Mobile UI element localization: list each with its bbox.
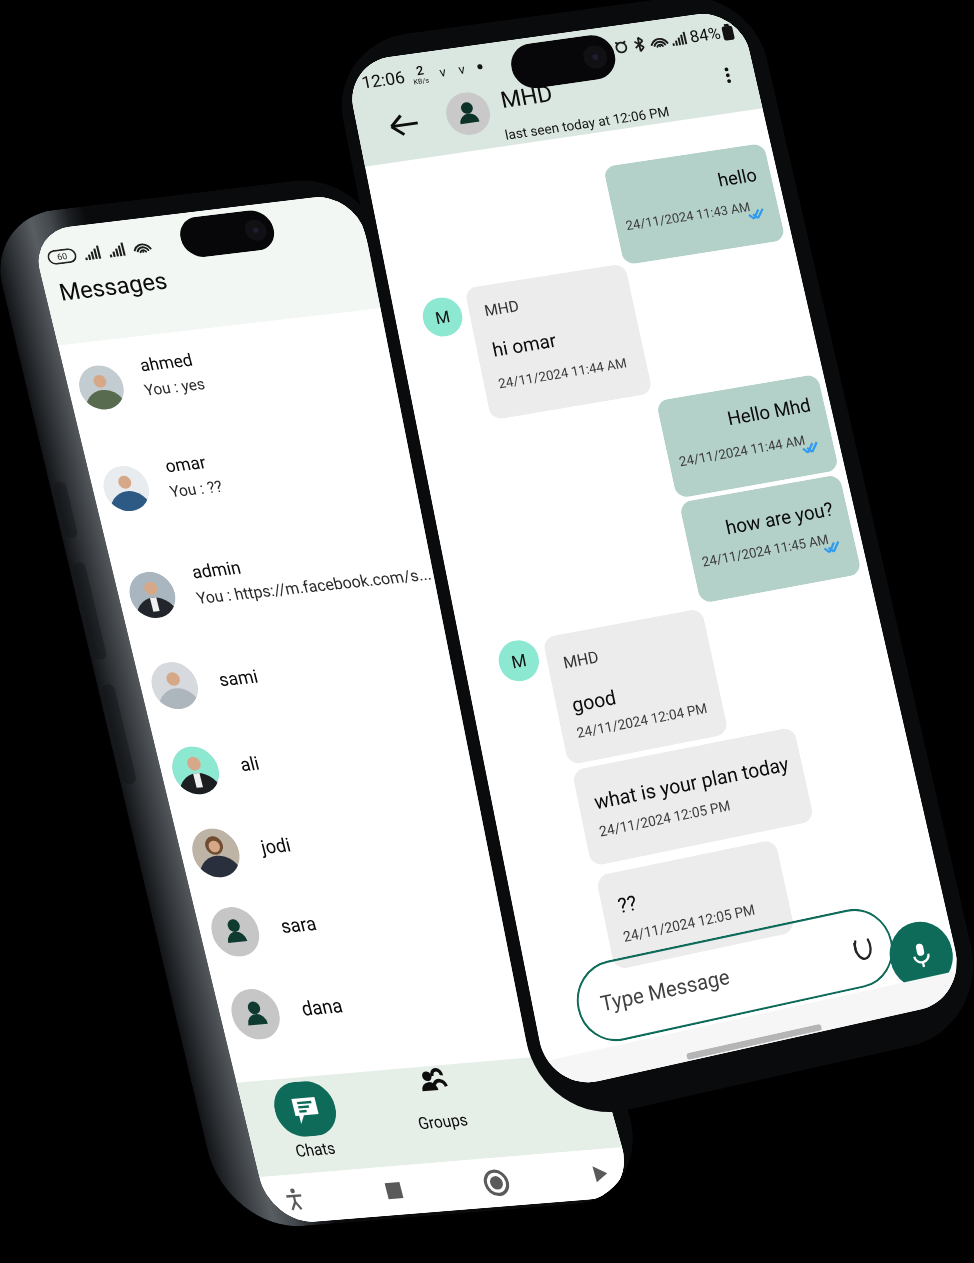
button[interactable]: jodi	[46, 669, 414, 729]
button[interactable]: More options	[372, 73, 400, 101]
button[interactable]: sami	[46, 497, 414, 557]
staticText: good	[104, 655, 146, 677]
button[interactable]: omar	[46, 286, 414, 346]
staticText: M	[50, 274, 64, 293]
button[interactable]: Type Message	[52, 898, 356, 970]
staticText: dana	[131, 846, 173, 868]
staticText: what is your plan today	[106, 746, 295, 768]
button[interactable]: dana	[46, 829, 414, 889]
staticText: You : yes	[129, 202, 197, 222]
button[interactable]: Groups	[213, 918, 275, 984]
staticText: Type Message	[74, 923, 197, 945]
staticText: MHD	[104, 617, 138, 635]
staticText: hello	[353, 181, 393, 203]
staticText: jodi	[131, 686, 162, 708]
other: Attach file	[314, 921, 340, 947]
staticText: 24/11/2024 12:05 PM	[105, 776, 232, 791]
button[interactable]: ahmed	[46, 174, 414, 234]
staticText: omar	[131, 285, 176, 307]
staticText: 24/11/2024 11:43 AM	[252, 215, 379, 230]
staticText: ali	[131, 602, 151, 624]
staticText: 24/11/2024 12:04 PM	[103, 684, 230, 699]
staticText: 24/11/2024 12:05 PM	[107, 873, 234, 888]
staticText: sara	[131, 765, 168, 787]
staticText: 24/11/2024 11:44 AM	[97, 348, 224, 363]
staticText: MHD	[98, 275, 132, 293]
button[interactable]: ali	[46, 585, 414, 645]
button[interactable]: sara	[46, 748, 414, 808]
button[interactable]: admin	[46, 401, 414, 461]
staticText: 84%	[357, 33, 389, 53]
